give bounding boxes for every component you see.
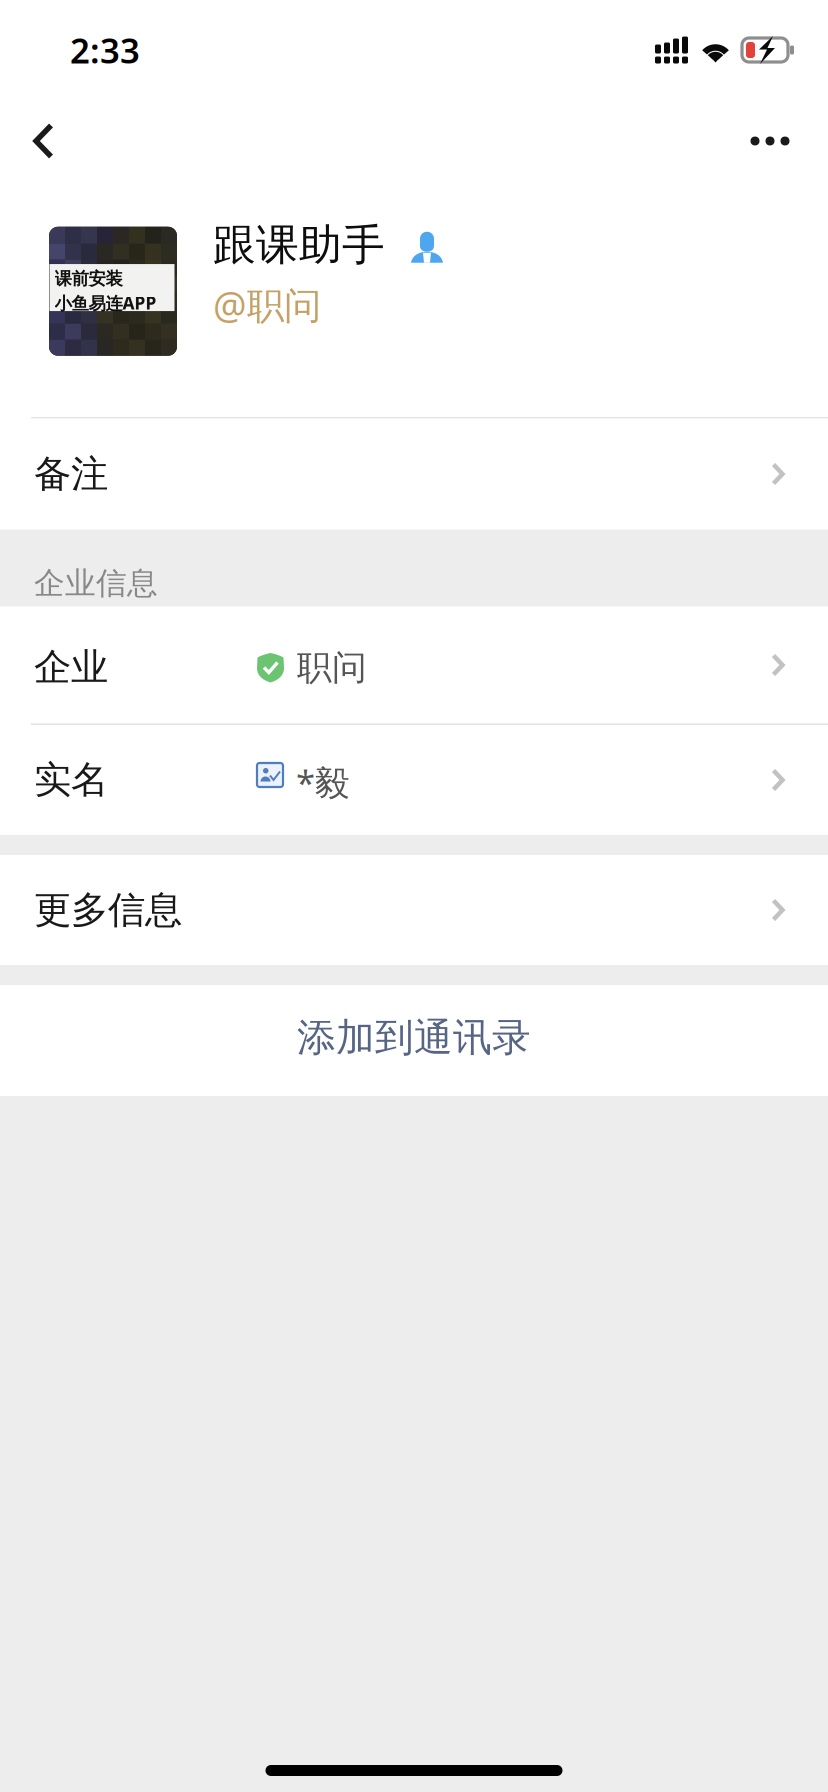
staticText: 2:33: [70, 27, 140, 73]
staticText: 备注: [34, 451, 108, 497]
staticText: 职问: [297, 646, 367, 689]
staticText: 企业: [34, 644, 108, 690]
staticText: 实名: [34, 757, 108, 803]
staticText: 添加到通讯录: [297, 1014, 531, 1061]
button[interactable]: More options: [715, 92, 825, 190]
staticText: 跟课助手: [213, 219, 385, 271]
button[interactable]: 企业: [0, 606, 828, 723]
button[interactable]: Back: [0, 92, 120, 190]
staticText: 小鱼易连APP: [54, 291, 156, 314]
button[interactable]: 备注: [0, 418, 828, 529]
staticText: @职问: [213, 280, 321, 329]
button[interactable]: 更多信息: [0, 855, 828, 965]
staticText: 企业信息: [34, 564, 158, 602]
staticText: *毅: [296, 759, 350, 805]
button[interactable]: 添加到通讯录: [0, 985, 828, 1096]
staticText: 更多信息: [34, 887, 182, 933]
staticText: 课前安装: [54, 268, 122, 289]
button[interactable]: 实名: [0, 725, 828, 835]
